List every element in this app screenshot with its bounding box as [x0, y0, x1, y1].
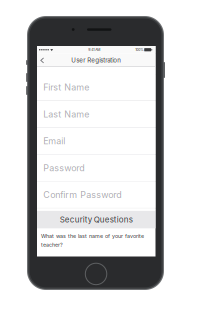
button[interactable]: Email — [37, 128, 155, 154]
button[interactable]: First Name — [37, 74, 155, 100]
staticText: 100% — [135, 48, 143, 52]
button[interactable]: Security Questions — [37, 211, 155, 228]
staticText: Email — [43, 136, 65, 146]
staticText: Password — [43, 162, 84, 173]
staticText: 9:41 AM — [88, 48, 100, 52]
staticText: Last Name — [43, 109, 89, 120]
button[interactable]: Confirm Password — [37, 182, 155, 208]
button[interactable]: Last Name — [37, 101, 155, 127]
button[interactable]: Password — [37, 155, 155, 181]
staticText: What was the last name of your favorite — [41, 233, 144, 239]
staticText: User Registration — [71, 56, 121, 64]
button[interactable]: Back — [37, 53, 48, 67]
staticText: Security Questions — [60, 215, 133, 224]
staticText: teacher? — [41, 241, 63, 248]
staticText: Confirm Password — [43, 189, 121, 200]
staticText: First Name — [43, 82, 89, 93]
